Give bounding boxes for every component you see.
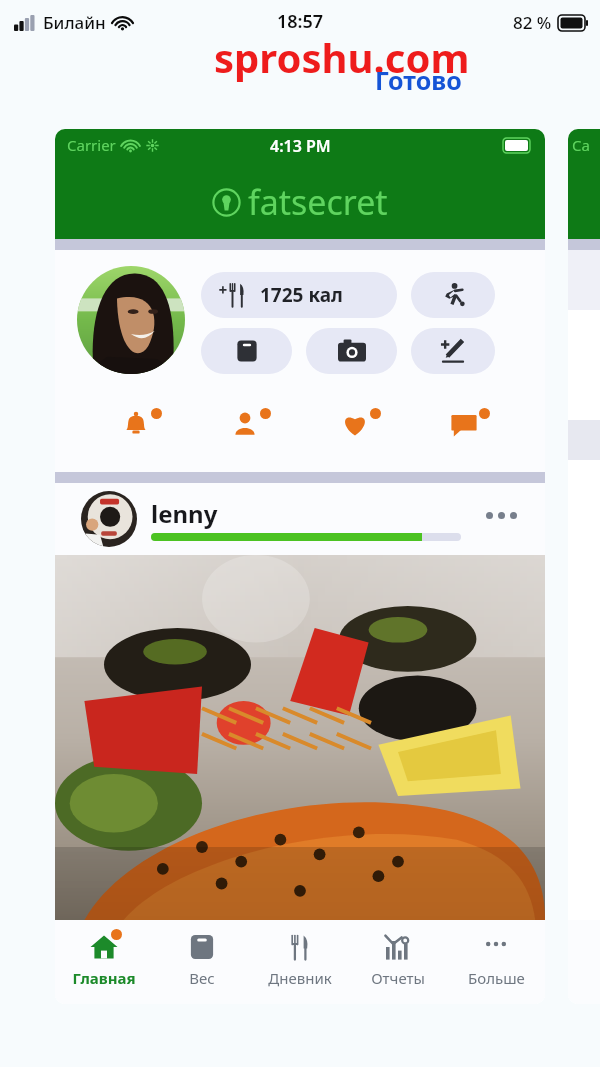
- button[interactable]: Дневник: [251, 920, 349, 1004]
- button[interactable]: Exercise: [411, 272, 495, 318]
- staticText: 4:13 PM: [270, 135, 331, 157]
- button[interactable]: [55, 555, 545, 920]
- button[interactable]: Camera: [306, 328, 397, 374]
- staticText: Билайн: [43, 11, 106, 34]
- button[interactable]: More options: [480, 506, 523, 525]
- button[interactable]: Friends: [217, 396, 273, 452]
- button[interactable]: lenny avatar: [81, 491, 137, 547]
- button[interactable]: Weight: [201, 328, 292, 374]
- staticText: Отчеты: [371, 968, 425, 988]
- button[interactable]: Profile photo: [77, 266, 185, 374]
- button[interactable]: lenny avatar: [55, 483, 545, 555]
- staticText: 82 %: [513, 11, 552, 34]
- button[interactable]: Больше: [447, 920, 545, 1004]
- staticText: 1725 кал: [260, 282, 343, 308]
- button[interactable]: Comments: [436, 396, 492, 452]
- button[interactable]: Add note: [411, 328, 495, 374]
- button[interactable]: Likes: [327, 396, 383, 452]
- staticText: Готово: [375, 63, 462, 97]
- staticText: sproshu.com: [214, 30, 470, 84]
- staticText: fatsecret: [248, 179, 388, 225]
- button[interactable]: Вес: [153, 920, 251, 1004]
- staticText: Больше: [468, 968, 525, 988]
- staticText: Вес: [189, 968, 215, 988]
- staticText: 18:57: [277, 9, 324, 34]
- staticText: lenny: [151, 497, 218, 530]
- button[interactable]: Notifications: [108, 396, 164, 452]
- staticText: Главная: [72, 968, 136, 988]
- staticText: Ca: [572, 135, 590, 155]
- button[interactable]: Отчеты: [349, 920, 447, 1004]
- staticText: Дневник: [268, 968, 332, 988]
- staticText: Carrier: [67, 135, 116, 155]
- button[interactable]: 1725 кал: [201, 272, 397, 318]
- button[interactable]: Главная: [55, 920, 153, 1004]
